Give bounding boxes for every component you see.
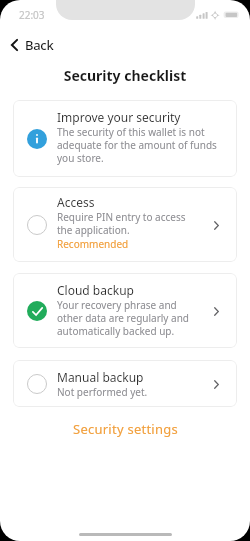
staticText: Back	[25, 36, 54, 54]
button[interactable]: Cloud backup	[13, 273, 237, 348]
button[interactable]: Access	[13, 187, 237, 262]
other: Open	[210, 219, 222, 231]
staticText: Security settings	[73, 420, 178, 438]
staticText: Cloud backup	[57, 282, 134, 298]
staticText: Require PIN entry to access the applicat…	[57, 210, 186, 237]
staticText: Recommended	[57, 237, 129, 251]
staticText: Manual backup	[57, 369, 144, 385]
button[interactable]: Improve your security	[13, 100, 237, 177]
button[interactable]: Back	[11, 33, 54, 57]
other: Open	[210, 305, 222, 317]
staticText: Not performed yet.	[57, 385, 148, 399]
staticText: The security of this wallet is not adequ…	[57, 125, 217, 165]
other: Open	[210, 378, 222, 390]
staticText: 22:03	[19, 8, 45, 22]
staticText: Access	[57, 194, 95, 210]
staticText: Improve your security	[57, 109, 181, 125]
button[interactable]: Security settings	[0, 418, 250, 440]
staticText: Security checklist	[0, 66, 250, 85]
staticText: Your recovery phrase and other data are …	[57, 298, 190, 338]
button[interactable]: Manual backup	[13, 360, 237, 407]
